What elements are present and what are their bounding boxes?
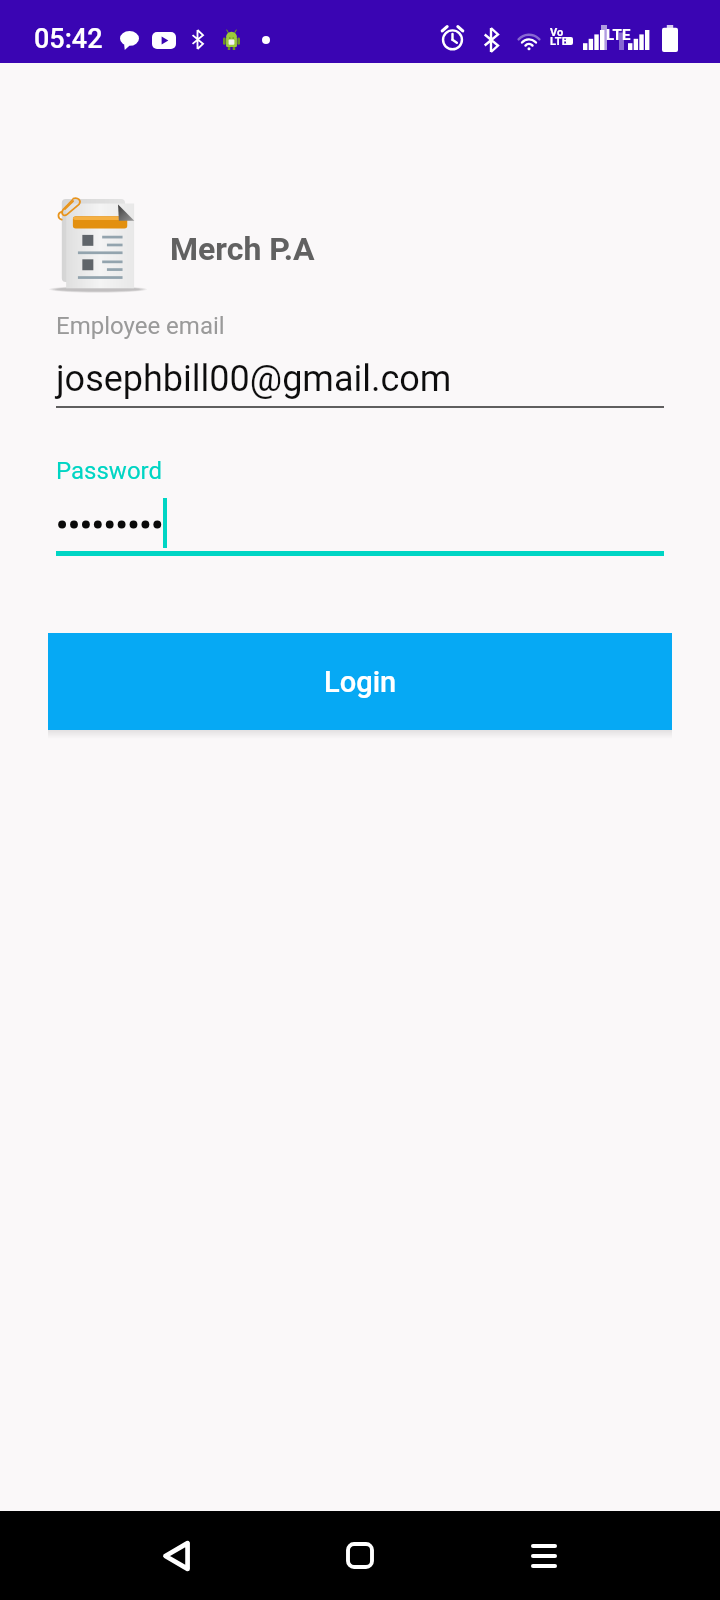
staticText: Merch P.A [170, 230, 315, 268]
staticText: Password [56, 457, 163, 485]
staticText: Vo [550, 26, 564, 39]
button[interactable]: Recent apps [424, 1511, 663, 1600]
button[interactable]: Home [296, 1511, 424, 1600]
button[interactable]: Password [56, 450, 664, 556]
staticText: LTE [550, 35, 568, 48]
button[interactable]: Merch P.A [57, 196, 281, 290]
staticText: Login [324, 665, 397, 699]
staticText: LTE [606, 26, 631, 44]
button[interactable]: Employee email [56, 305, 664, 408]
staticText: 05:42 [34, 23, 103, 55]
button[interactable]: Login [48, 633, 672, 730]
staticText: josephbill00@gmail.com [56, 358, 452, 400]
staticText: Employee email [56, 312, 225, 340]
button[interactable]: Back [57, 1511, 296, 1600]
